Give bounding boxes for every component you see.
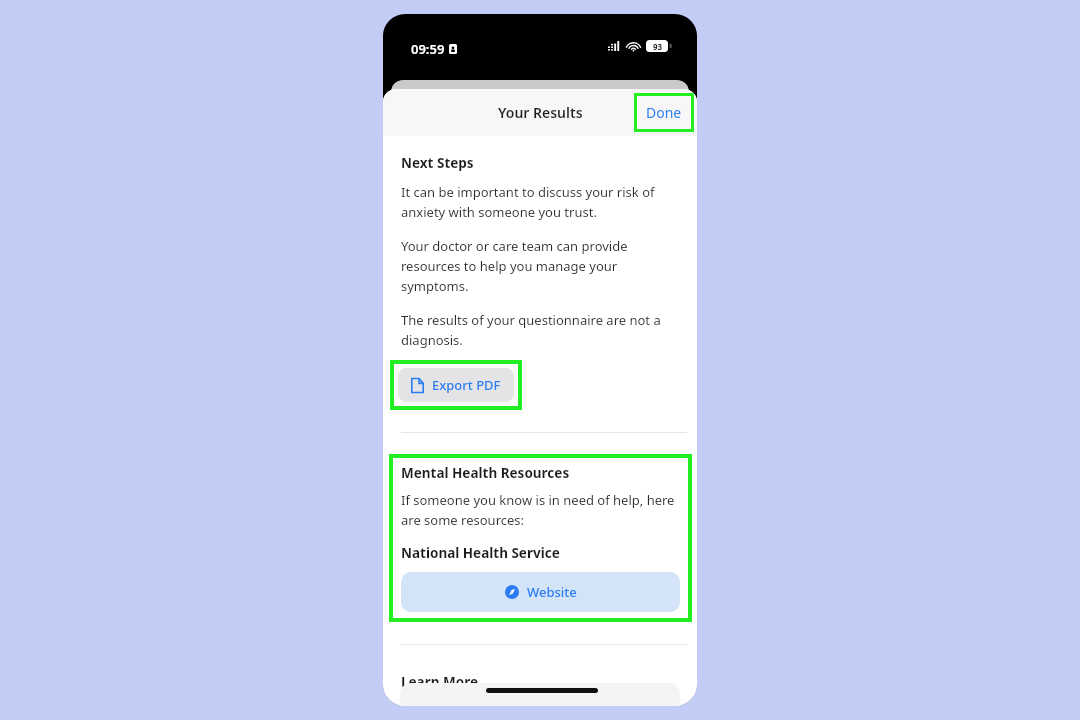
staticText: National Health Service [401, 544, 560, 562]
staticText: Learn More [401, 673, 479, 691]
button[interactable]: Export PDF [398, 368, 514, 402]
button[interactable]: Done [637, 96, 691, 129]
staticText: 93 [653, 41, 663, 52]
staticText: Mental Health Resources [401, 464, 570, 482]
staticText: Your Results [498, 103, 583, 122]
button[interactable]: Mental Health Resources [393, 458, 688, 618]
button[interactable]: Open website [401, 572, 680, 612]
staticText: If someone you know is in need of help, … [401, 491, 680, 529]
staticText: The results of your questionnaire are no… [401, 311, 683, 349]
staticText: It can be important to discuss your risk… [401, 183, 683, 221]
staticText: Next Steps [401, 154, 474, 172]
other: Open website [505, 585, 519, 599]
staticText: 09:59 [411, 40, 445, 58]
staticText: Export PDF [432, 376, 501, 394]
staticText: Done [646, 103, 682, 122]
staticText: Your doctor or care team can provide res… [401, 237, 683, 295]
staticText: Website [527, 583, 577, 601]
